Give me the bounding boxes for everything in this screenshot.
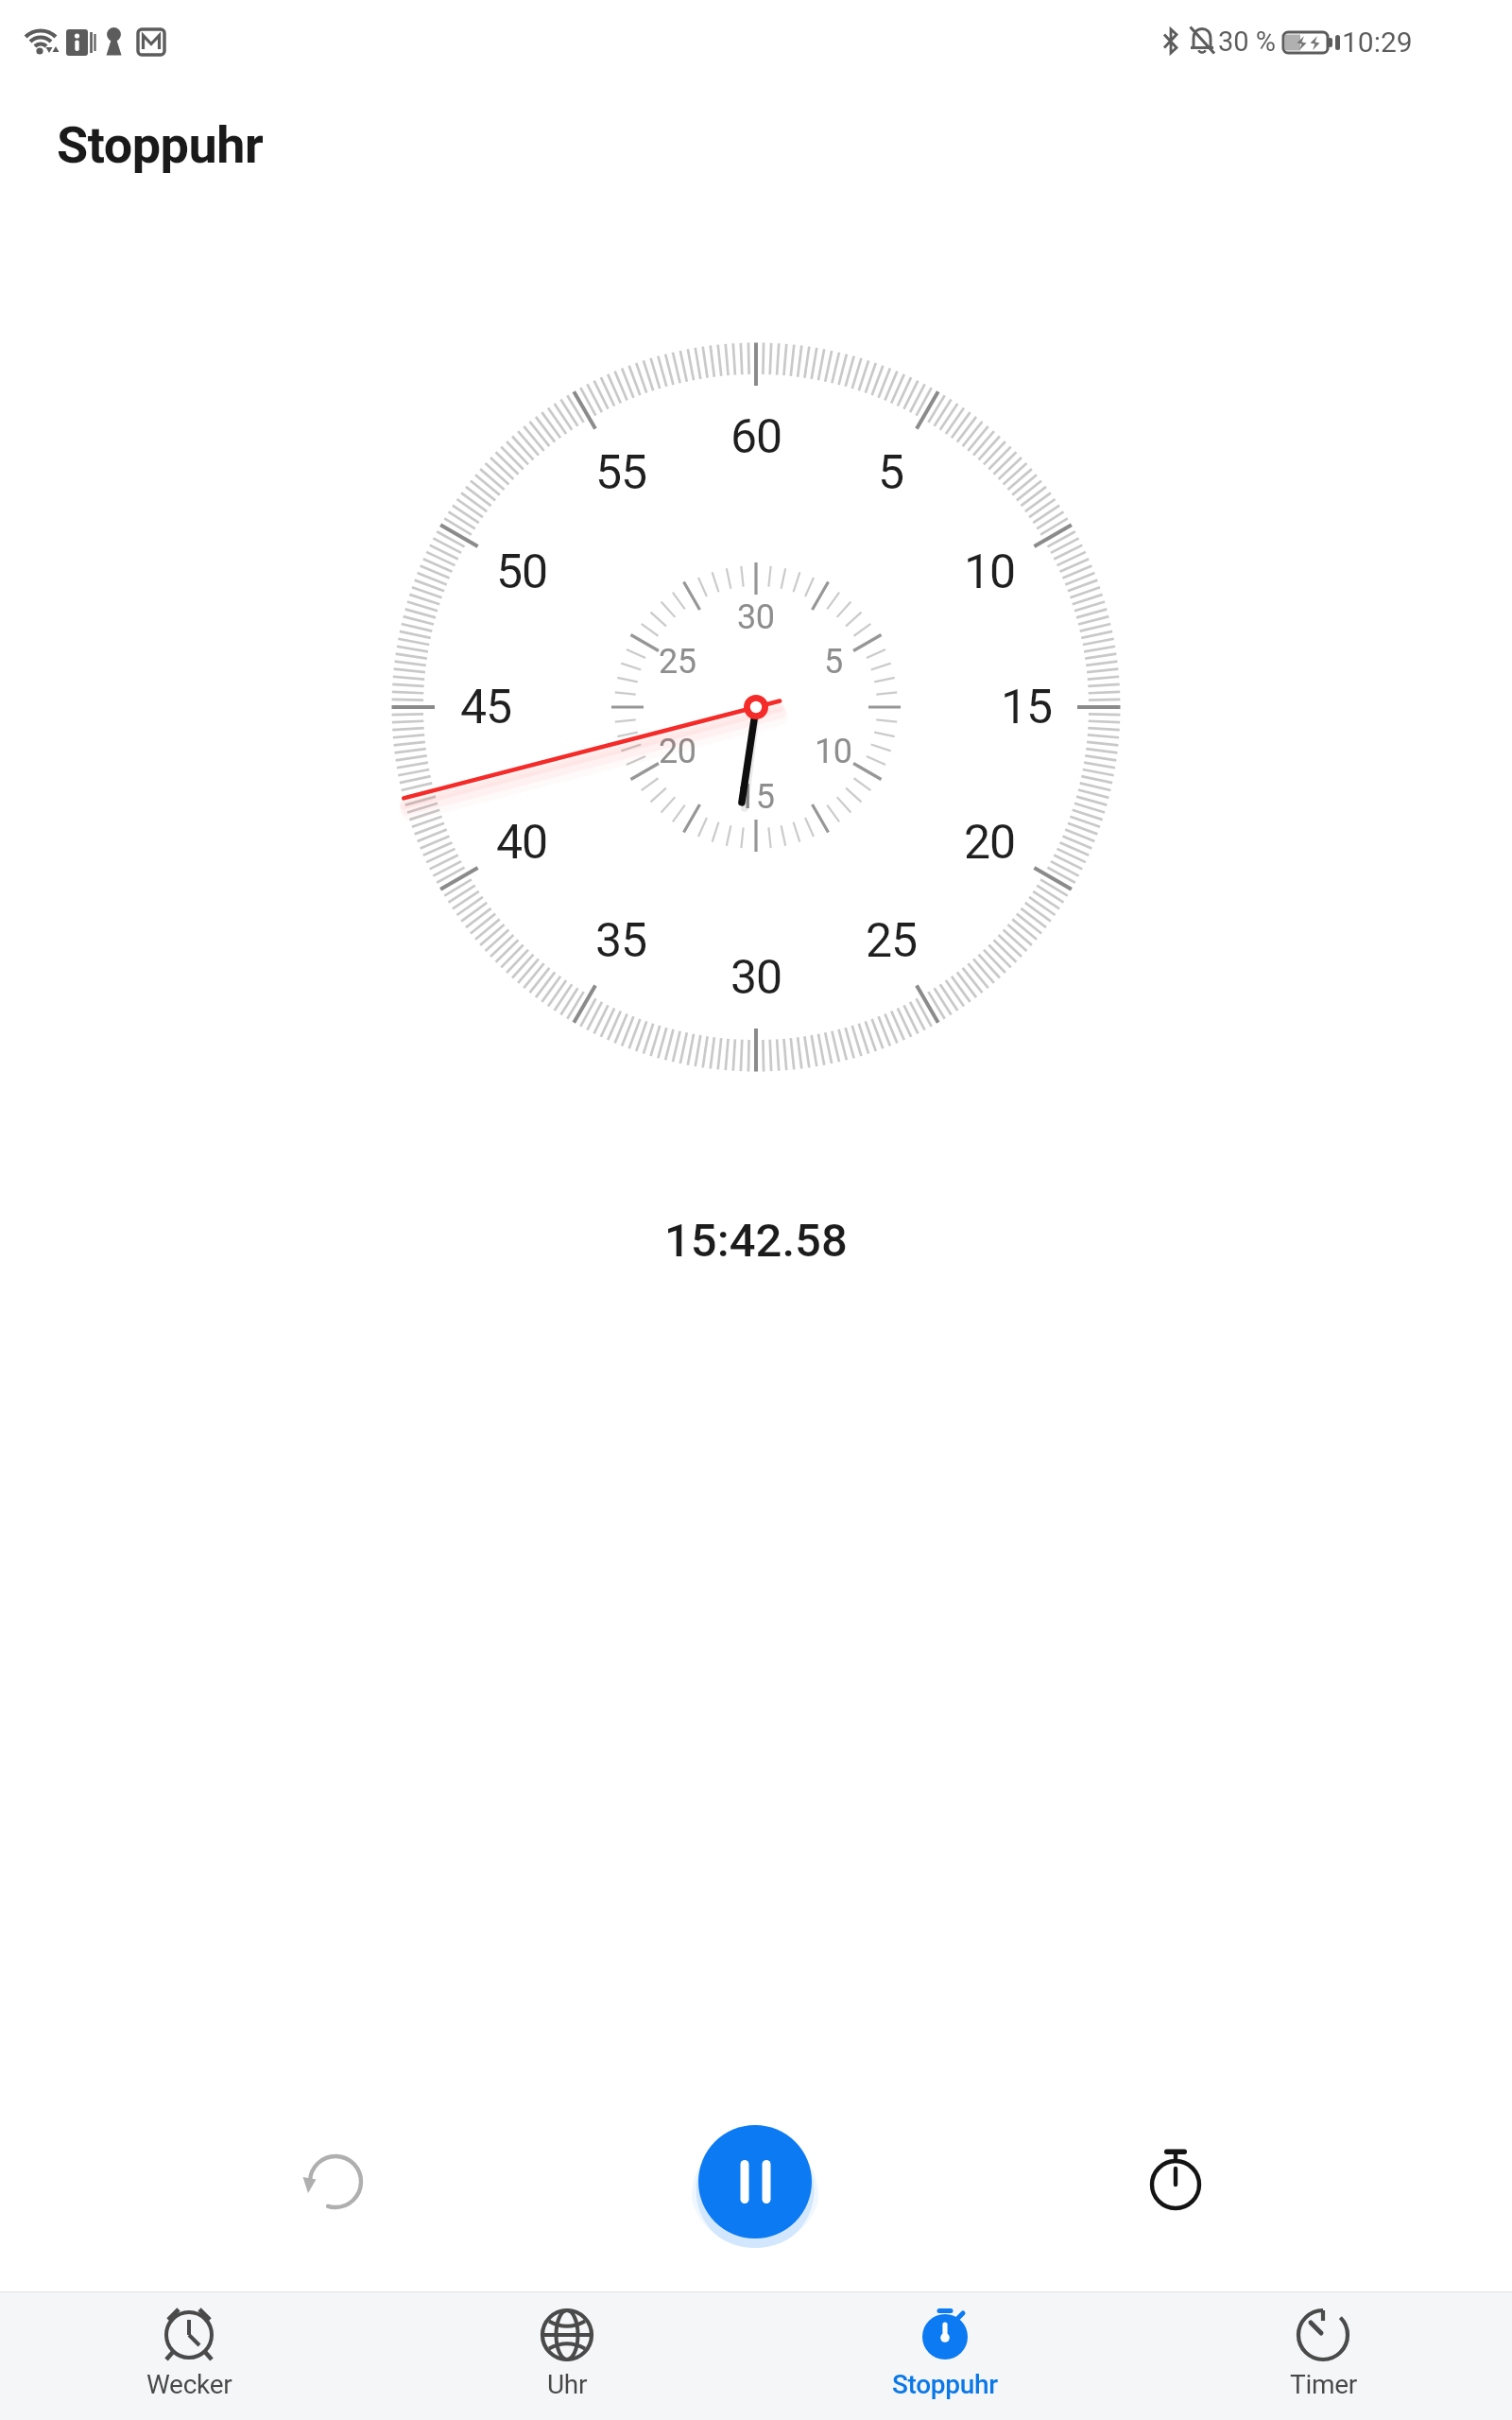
button[interactable]: Wecker	[0, 2291, 378, 2420]
staticText: 20	[659, 732, 696, 771]
button[interactable]	[689, 2116, 821, 2248]
staticText: 5	[878, 445, 904, 501]
staticText: 30	[730, 950, 782, 1006]
staticText: 45	[460, 680, 512, 735]
button[interactable]: Uhr	[378, 2291, 756, 2420]
staticText: 15:42.58	[664, 1214, 848, 1268]
staticText: 50	[496, 544, 548, 600]
staticText: 10:29	[1342, 26, 1413, 59]
staticText: 10	[964, 544, 1016, 600]
staticText: Timer	[1290, 2369, 1357, 2400]
button[interactable]	[1124, 2130, 1228, 2234]
staticText: 60	[730, 409, 782, 465]
staticText: 30	[737, 597, 775, 637]
staticText: Stoppuhr	[57, 115, 264, 175]
button[interactable]	[283, 2130, 387, 2234]
staticText: 15	[1001, 680, 1053, 735]
staticText: Uhr	[547, 2369, 588, 2400]
staticText: 5	[824, 642, 843, 682]
staticText: Wecker	[146, 2369, 232, 2400]
staticText: 40	[496, 815, 548, 871]
staticText: 25	[659, 642, 696, 682]
staticText: 35	[595, 913, 647, 969]
button[interactable]: Timer	[1134, 2291, 1512, 2420]
staticText: 10	[815, 732, 852, 771]
staticText: 25	[866, 913, 918, 969]
staticText: Stoppuhr	[892, 2369, 998, 2400]
staticText: 55	[595, 445, 647, 501]
staticText: 20	[964, 815, 1016, 871]
staticText: 15	[737, 777, 775, 817]
button[interactable]: Stoppuhr	[756, 2291, 1134, 2420]
staticText: 30 %	[1218, 26, 1277, 58]
